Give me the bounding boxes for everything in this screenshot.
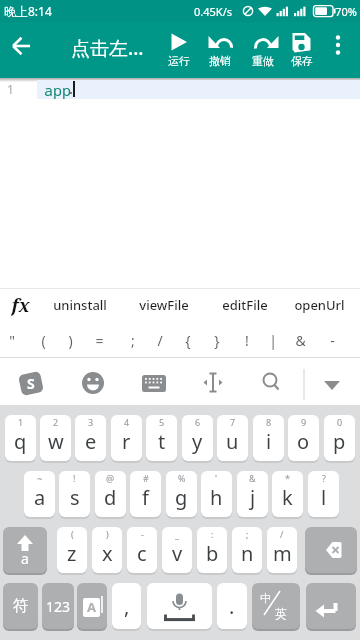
staticText: 5 bbox=[159, 416, 165, 428]
staticText: 保存 bbox=[291, 54, 313, 68]
staticText: a bbox=[34, 484, 46, 511]
staticText: 英 bbox=[275, 606, 287, 621]
staticText: n bbox=[241, 540, 254, 567]
staticText: | bbox=[269, 331, 277, 350]
button[interactable] bbox=[316, 367, 348, 399]
button[interactable]: openUrl bbox=[289, 295, 349, 315]
button[interactable]: ; bbox=[121, 330, 145, 350]
button[interactable]: 123 bbox=[42, 583, 74, 629]
button[interactable] bbox=[147, 583, 212, 629]
button[interactable] bbox=[197, 367, 229, 399]
button[interactable]: | bbox=[261, 330, 285, 350]
button[interactable] bbox=[256, 367, 288, 399]
button[interactable] bbox=[15, 367, 47, 399]
button[interactable]: editFile bbox=[215, 295, 275, 315]
button[interactable]: ) bbox=[92, 527, 122, 573]
button[interactable]: fx bbox=[6, 293, 34, 317]
button[interactable]: 保存 bbox=[283, 53, 321, 69]
button[interactable]: ? bbox=[308, 471, 339, 517]
button[interactable]: ~ bbox=[24, 471, 55, 517]
button[interactable]: 符 bbox=[3, 583, 38, 629]
button[interactable]: , bbox=[112, 583, 141, 629]
button[interactable] bbox=[6, 32, 38, 60]
button[interactable]: . bbox=[217, 583, 247, 629]
staticText: ) bbox=[106, 528, 109, 540]
button[interactable]: - bbox=[320, 330, 344, 350]
button[interactable]: ) bbox=[58, 330, 82, 350]
button[interactable]: & bbox=[288, 330, 312, 350]
staticText: ! bbox=[245, 331, 249, 350]
button[interactable]: _ bbox=[162, 527, 192, 573]
button[interactable]: 4 bbox=[111, 415, 142, 461]
staticText: } bbox=[214, 331, 220, 350]
button[interactable]: % bbox=[166, 471, 197, 517]
button[interactable] bbox=[136, 367, 168, 399]
staticText: . bbox=[66, 78, 76, 97]
button[interactable]: ! bbox=[59, 471, 90, 517]
button[interactable]: ' bbox=[201, 471, 232, 517]
button[interactable]: 0 bbox=[324, 415, 355, 461]
button[interactable]: ; bbox=[232, 527, 262, 573]
button[interactable]: 中 bbox=[252, 583, 300, 629]
button[interactable]: * bbox=[272, 471, 303, 517]
button[interactable]: : bbox=[197, 527, 227, 573]
staticText: h bbox=[210, 484, 223, 511]
staticText: 70% bbox=[335, 4, 357, 19]
staticText: uninstall bbox=[53, 296, 107, 314]
button[interactable]: uninstall bbox=[50, 295, 110, 315]
button[interactable]: 6 bbox=[182, 415, 213, 461]
staticText: ; bbox=[131, 331, 135, 350]
staticText: ' bbox=[215, 472, 218, 484]
staticText: t bbox=[158, 428, 166, 455]
button[interactable]: ( bbox=[57, 527, 87, 573]
staticText: / bbox=[157, 331, 163, 350]
button[interactable]: = bbox=[87, 330, 111, 350]
button[interactable]: } bbox=[205, 330, 229, 350]
button[interactable]: A bbox=[77, 583, 107, 629]
button[interactable]: 3 bbox=[75, 415, 106, 461]
staticText: & bbox=[295, 331, 306, 350]
staticText: v bbox=[172, 540, 183, 567]
staticText: 9 bbox=[301, 416, 307, 428]
button[interactable]: - bbox=[127, 527, 157, 573]
staticText: { bbox=[185, 331, 191, 350]
button[interactable]: 撤销 bbox=[201, 53, 239, 69]
button[interactable]: 5 bbox=[146, 415, 177, 461]
button[interactable]: ! bbox=[235, 330, 259, 350]
button[interactable]: / bbox=[148, 330, 172, 350]
staticText: 6 bbox=[195, 416, 201, 428]
button[interactable] bbox=[306, 583, 356, 629]
button[interactable]: ( bbox=[31, 330, 55, 350]
button[interactable]: 8 bbox=[253, 415, 284, 461]
button[interactable]: 运行 bbox=[160, 53, 198, 69]
button[interactable]: & bbox=[237, 471, 268, 517]
button[interactable] bbox=[77, 367, 109, 399]
button[interactable]: 7 bbox=[217, 415, 248, 461]
staticText: z bbox=[67, 540, 77, 567]
staticText: A bbox=[87, 598, 96, 616]
staticText: fx bbox=[11, 293, 30, 317]
button[interactable]: 9 bbox=[288, 415, 319, 461]
button[interactable]: 重做 bbox=[244, 53, 282, 69]
button[interactable]: viewFile bbox=[134, 295, 194, 315]
button[interactable]: 2 bbox=[40, 415, 71, 461]
button[interactable]: @ bbox=[95, 471, 126, 517]
button[interactable]: { bbox=[176, 330, 200, 350]
staticText: u bbox=[226, 428, 239, 455]
staticText: 符 bbox=[13, 596, 29, 616]
button[interactable]: " bbox=[0, 330, 24, 350]
button[interactable]: / bbox=[267, 527, 297, 573]
staticText: = bbox=[95, 331, 104, 350]
staticText: p bbox=[333, 428, 346, 455]
staticText: 3 bbox=[88, 416, 94, 428]
staticText: 1 bbox=[7, 81, 14, 97]
button[interactable]: # bbox=[130, 471, 161, 517]
button[interactable]: 1 bbox=[5, 415, 36, 461]
staticText: ! bbox=[73, 472, 76, 484]
button[interactable] bbox=[305, 527, 357, 573]
staticText: a bbox=[21, 549, 29, 568]
staticText: 123 bbox=[46, 597, 71, 616]
button[interactable]: a bbox=[3, 527, 47, 573]
staticText: - bbox=[141, 528, 144, 540]
staticText: 撤销 bbox=[209, 54, 231, 68]
